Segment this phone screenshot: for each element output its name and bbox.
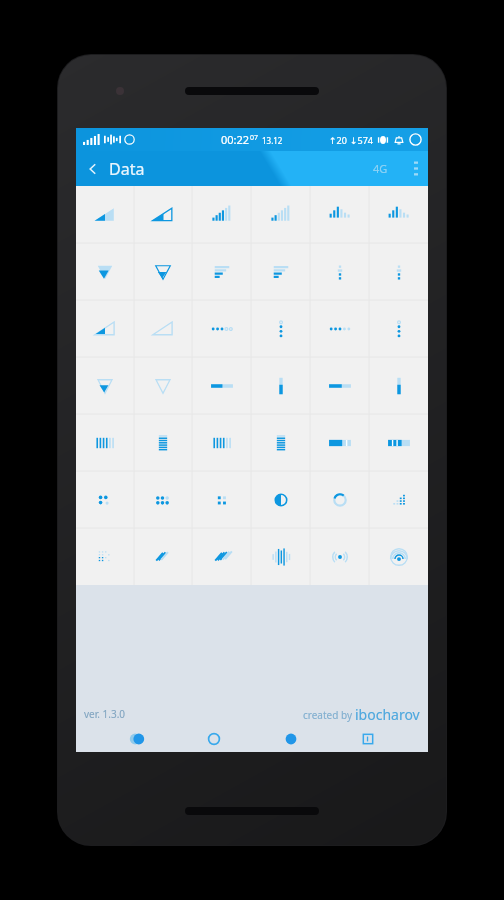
button[interactable]: Icon 14 [134,300,192,357]
button[interactable]: Icon 15 [192,300,251,357]
button[interactable]: Icon 8 [134,243,192,300]
button[interactable]: Icon 24 [369,357,428,414]
button[interactable]: Icon 25 [76,414,134,471]
button[interactable]: Icon 31 [76,471,134,528]
staticText: Data [109,158,145,180]
button[interactable]: Icon 39 [192,528,251,585]
button[interactable]: Icon 9 [192,243,251,300]
button[interactable]: Icon 13 [76,300,134,357]
button[interactable]: Dual mode [98,726,175,752]
button[interactable]: 4G [365,154,396,183]
button[interactable]: Icon 12 [369,243,428,300]
button[interactable]: Icon 18 [369,300,428,357]
staticText: ↑20 [329,134,347,146]
button[interactable]: Icon 11 [310,243,369,300]
button[interactable]: Icon 2 [134,186,192,243]
button[interactable]: Icon 20 [134,357,192,414]
button[interactable]: Icon 23 [310,357,369,414]
button[interactable]: Icon 3 [192,186,251,243]
button[interactable]: Icon 21 [192,357,251,414]
staticText: created by [303,708,355,722]
button[interactable]: Icon 28 [251,414,310,471]
button[interactable]: Icon 38 [134,528,192,585]
button[interactable]: Icon 40 [251,528,310,585]
button[interactable]: Icon 36 [369,471,428,528]
button[interactable]: Back [76,153,155,185]
button[interactable]: Frame mode [329,726,406,752]
button[interactable]: Icon 33 [192,471,251,528]
button[interactable]: Icon 26 [134,414,192,471]
button[interactable]: Icon 32 [134,471,192,528]
button[interactable]: Icon 22 [251,357,310,414]
button[interactable]: Icon 29 [310,414,369,471]
button[interactable]: Icon 7 [76,243,134,300]
staticText: 07 [250,133,259,143]
button[interactable]: Filled mode [252,726,329,752]
button[interactable]: Icon 35 [310,471,369,528]
staticText: 4G [373,161,388,176]
button[interactable]: Icon 1 [76,186,134,243]
button[interactable]: Icon 30 [369,414,428,471]
button[interactable]: Icon 27 [192,414,251,471]
staticText: ibocharov [355,705,420,724]
button[interactable]: Icon 5 [310,186,369,243]
button[interactable]: Icon 17 [310,300,369,357]
button[interactable]: Outline mode [175,726,252,752]
button[interactable]: Icon 16 [251,300,310,357]
button[interactable]: Icon 6 [369,186,428,243]
button[interactable]: Icon 42 [369,528,428,585]
button[interactable]: Icon 41 [310,528,369,585]
other: Back [86,162,100,176]
staticText: 00:22 [221,132,250,147]
button[interactable]: Icon 4 [251,186,310,243]
button[interactable]: Icon 10 [251,243,310,300]
staticText: 13.12 [262,135,283,146]
button[interactable]: Icon 37 [76,528,134,585]
staticText: ver. 1.3.0 [84,707,126,721]
button[interactable]: More options [404,155,428,182]
button[interactable]: Icon 34 [251,471,310,528]
staticText: ↓574 [350,134,373,146]
button[interactable]: Icon 19 [76,357,134,414]
